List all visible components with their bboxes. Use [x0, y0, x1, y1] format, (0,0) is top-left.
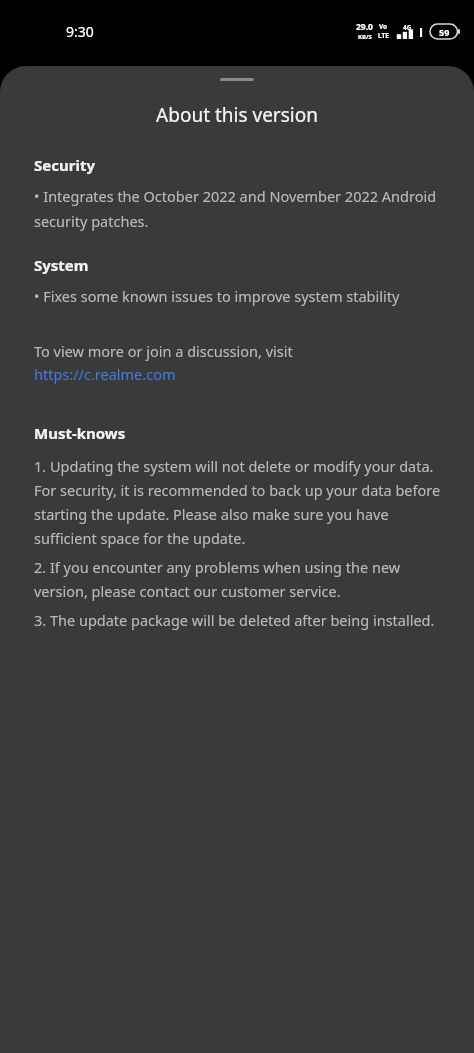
- staticText: https://c.realme.com: [34, 364, 176, 384]
- staticText: LTE: [378, 31, 389, 40]
- staticText: KB/S: [358, 33, 372, 41]
- staticText: Vo: [379, 22, 388, 31]
- other: Mobile signal 4G: [395, 23, 417, 39]
- staticText: 29.0: [356, 21, 373, 33]
- staticText: Must-knows: [34, 423, 126, 443]
- staticText: • Fixes some known issues to improve sys…: [34, 286, 400, 306]
- staticText: 3. The update package will be deleted af…: [34, 610, 435, 630]
- staticText: To view more or join a discussion, visit: [34, 341, 293, 361]
- staticText: About this version: [156, 102, 318, 128]
- button[interactable]: https://c.realme.com: [34, 364, 176, 384]
- staticText: 2. If you encounter any problems when us…: [34, 557, 446, 601]
- staticText: System: [34, 255, 89, 275]
- staticText: 59: [439, 26, 450, 38]
- staticText: 4G: [403, 23, 412, 32]
- staticText: 9:30: [66, 22, 94, 41]
- staticText: 1. Updating the system will not delete o…: [34, 456, 446, 548]
- staticText: • Integrates the October 2022 and Novemb…: [34, 186, 446, 232]
- staticText: Security: [34, 155, 95, 175]
- other: Battery 59 percent: [430, 24, 460, 39]
